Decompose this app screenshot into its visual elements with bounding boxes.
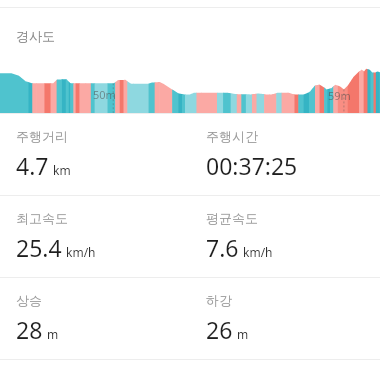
staticText: m	[47, 326, 59, 342]
staticText: 최고속도	[16, 210, 68, 226]
staticText: 50m	[93, 87, 116, 102]
staticText: 59m	[328, 88, 351, 103]
staticText: 7.6	[206, 232, 239, 263]
staticText: 26	[206, 314, 233, 345]
staticText: 평균속도	[206, 210, 258, 226]
staticText: 주행거리	[16, 128, 68, 144]
staticText: 하강	[206, 292, 232, 308]
staticText: km	[53, 162, 71, 178]
staticText: km/h	[66, 244, 96, 260]
button[interactable]: 주행시간	[190, 114, 380, 195]
button[interactable]: 경사도 차트	[0, 8, 380, 113]
button[interactable]: 최고속도	[0, 196, 190, 277]
button[interactable]: 하강	[190, 278, 380, 359]
staticText: m	[237, 326, 249, 342]
staticText: 00:37:25	[206, 150, 298, 181]
staticText: 주행시간	[206, 128, 258, 144]
button[interactable]: 상승	[0, 278, 190, 359]
button[interactable]: 주행거리	[0, 114, 190, 195]
staticText: 4.7	[16, 150, 49, 181]
staticText: km/h	[243, 244, 273, 260]
staticText: 25.4	[16, 232, 62, 263]
staticText: 경사도	[16, 28, 55, 44]
button[interactable]: 평균속도	[190, 196, 380, 277]
staticText: 상승	[16, 292, 42, 308]
staticText: 28	[16, 314, 43, 345]
